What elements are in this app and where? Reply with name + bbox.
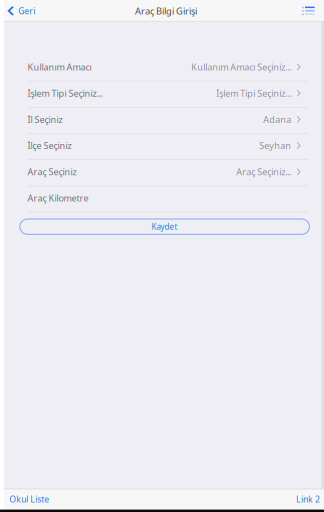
staticText: Kullanım Amacı Seçiniz... [191, 61, 291, 73]
staticText: Seyhan [259, 139, 291, 152]
button[interactable]: Araç Kilometre [27, 186, 308, 212]
button[interactable]: Kaydet [20, 219, 309, 234]
staticText: Kaydet [152, 221, 178, 232]
staticText: Kullanım Amacı [27, 61, 91, 73]
staticText: Araç Kilometre [27, 192, 88, 204]
button[interactable]: İl Seçiniz [27, 108, 308, 134]
button[interactable]: Kullanım Amacı [27, 55, 308, 81]
staticText: Araç Seçiniz... [236, 166, 291, 178]
staticText: Araç Bilgi Girişi [135, 4, 197, 17]
staticText: Geri [18, 5, 35, 17]
staticText: Link 2 [296, 493, 320, 505]
button[interactable]: Link 2 [287, 488, 324, 512]
staticText: İşlem Tipi Seçiniz... [216, 87, 291, 99]
staticText: Araç Seçiniz [27, 166, 76, 178]
staticText: İl Seçiniz [27, 113, 62, 125]
button[interactable]: Liste [294, 0, 324, 22]
staticText: Okul Liste [9, 493, 49, 505]
button[interactable]: İşlem Tipi Seçiniz... [27, 81, 308, 108]
button[interactable]: Okul Liste [4, 488, 58, 512]
button[interactable]: Geri [4, 0, 41, 22]
staticText: İşlem Tipi Seçiniz... [27, 87, 102, 99]
button[interactable]: İlçe Seçiniz [27, 134, 308, 160]
staticText: Adana [263, 113, 291, 125]
staticText: İlçe Seçiniz [27, 139, 71, 152]
button[interactable]: Araç Seçiniz [27, 160, 308, 186]
